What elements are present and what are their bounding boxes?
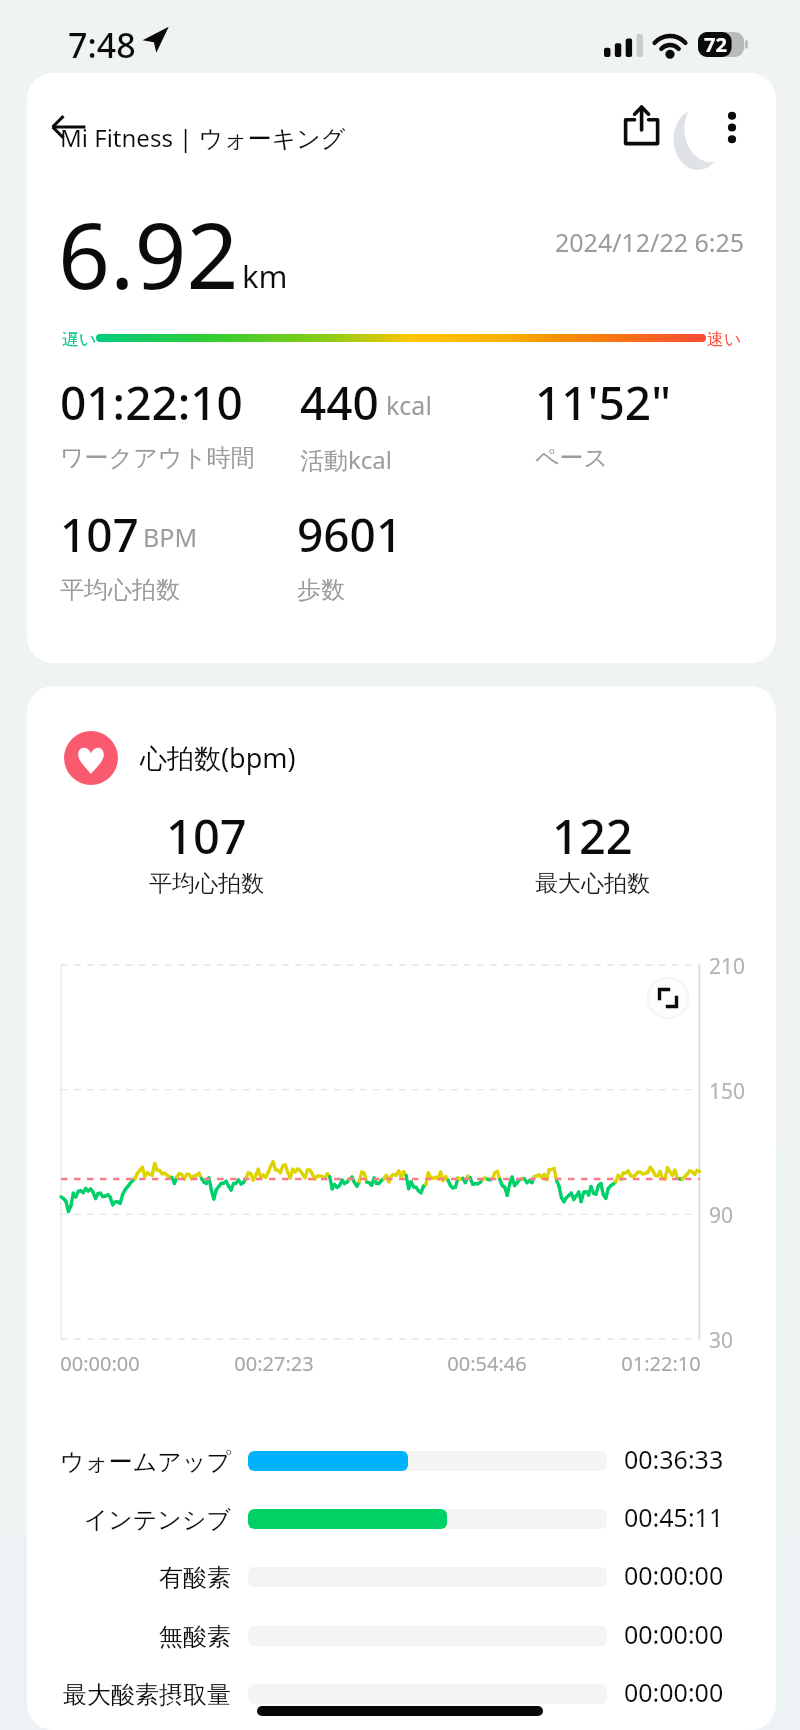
staticText: 122 [552,804,633,868]
staticText: 最大心拍数 [535,869,650,898]
button[interactable]: More options [712,103,752,147]
staticText: 30 [709,1326,734,1355]
staticText: ウォームアップ [27,1447,231,1477]
staticText: 平均心拍数 [60,575,180,605]
staticText: 107 [166,804,247,868]
staticText: 最大酸素摂取量 [27,1680,231,1710]
staticText: km [242,255,288,297]
staticText: インテンシブ [27,1505,231,1535]
staticText: 00:45:11 [624,1500,724,1534]
staticText: 00:36:33 [624,1442,724,1476]
staticText: 有酸素 [27,1563,231,1593]
staticText: 440 [300,371,379,434]
staticText: 無酸素 [27,1622,231,1652]
staticText: 210 [709,952,746,981]
staticText: 00:27:23 [194,1350,354,1377]
staticText: ワークアウト時間 [60,443,255,473]
staticText: 01:22:10 [581,1350,741,1377]
staticText: 9601 [297,503,403,566]
staticText: 01:22:10 [60,371,243,434]
staticText: 72 [704,31,727,56]
staticText: 00:00:00 [624,1675,724,1709]
staticText: BPM [143,520,198,554]
staticText: kcal [386,388,432,422]
staticText: 平均心拍数 [149,869,264,898]
staticText: 00:54:46 [407,1350,567,1377]
staticText: Mi Fitness | ウォーキング [60,121,346,154]
staticText: 心拍数(bpm) [140,739,296,776]
button[interactable]: Sleep [672,106,724,170]
staticText: 活動kcal [300,443,392,476]
staticText: ペース [535,443,609,473]
staticText: 00:00:00 [624,1617,724,1651]
staticText: 2024/12/22 6:25 [555,225,745,259]
button[interactable]: Expand chart [645,975,691,1021]
button[interactable]: Back [51,116,86,138]
button[interactable]: Heart rate [64,731,118,785]
staticText: 歩数 [297,575,345,605]
staticText: 7:48 [68,22,136,68]
staticText: 107 [60,503,139,566]
staticText: 00:00:00 [27,1350,180,1377]
button[interactable]: Share [618,101,668,151]
staticText: 150 [709,1077,746,1106]
staticText: 11'52" [535,371,671,434]
staticText: 遅い [62,329,97,350]
staticText: 6.92 [58,192,239,316]
staticText: 00:00:00 [624,1558,724,1592]
staticText: 90 [709,1201,734,1230]
staticText: 速い [707,329,742,350]
